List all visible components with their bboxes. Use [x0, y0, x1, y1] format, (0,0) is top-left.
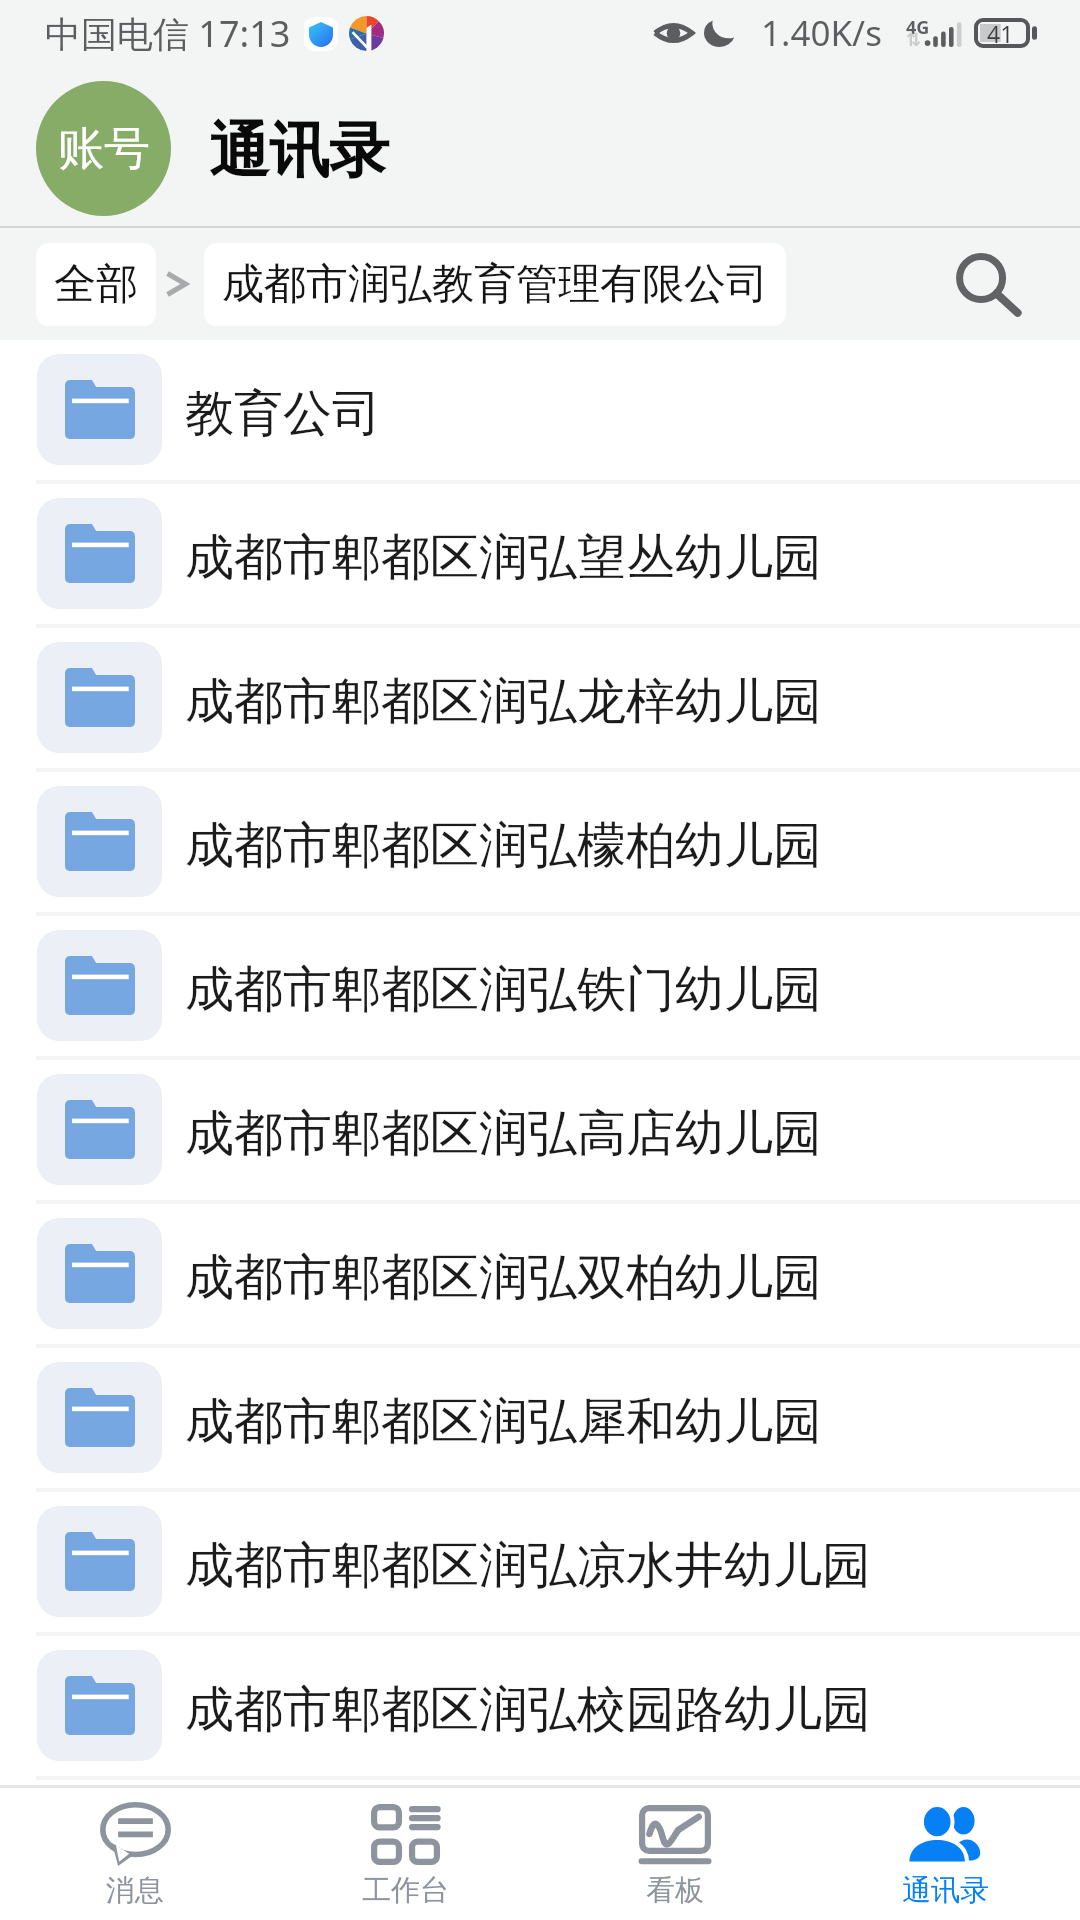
- button[interactable]: 成都市郫都区润弘双柏幼儿园: [0, 1204, 1080, 1348]
- button[interactable]: 成都市润弘教育管理有限公司: [204, 243, 786, 326]
- staticText: 成都市郫都区润弘高店幼儿园: [185, 1103, 822, 1165]
- staticText: 全部: [54, 258, 138, 311]
- button[interactable]: 成都市郫都区润弘高店幼儿园: [0, 1060, 1080, 1204]
- staticText: 成都市郫都区润弘望丛幼儿园: [185, 527, 822, 589]
- staticText: 看板: [646, 1872, 704, 1909]
- staticText: 成都市郫都区润弘双柏幼儿园: [185, 1247, 822, 1309]
- staticText: 成都市郫都区润弘犀和幼儿园: [185, 1391, 822, 1453]
- staticText: 成都市润弘教育管理有限公司: [222, 258, 768, 311]
- staticText: 4G: [906, 15, 930, 40]
- staticText: 1.40K/s: [761, 9, 882, 57]
- button[interactable]: 成都市郫都区润弘犀和幼儿园: [0, 1348, 1080, 1492]
- button[interactable]: 全部: [36, 243, 156, 326]
- button[interactable]: 搜索: [933, 229, 1043, 339]
- staticText: 工作台: [362, 1872, 449, 1909]
- staticText: 成都市郫都区润弘檬柏幼儿园: [185, 815, 822, 877]
- button[interactable]: 成都市郫都区润弘铁门幼儿园: [0, 916, 1080, 1060]
- button[interactable]: 消息: [0, 1788, 270, 1920]
- staticText: 教育公司: [185, 383, 381, 445]
- button[interactable]: 工作台: [270, 1788, 540, 1920]
- staticText: 成都市郫都区润弘校园路幼儿园: [185, 1679, 871, 1741]
- button[interactable]: 账号: [36, 81, 171, 216]
- staticText: ⇅: [906, 29, 922, 50]
- staticText: 中国电信 17:13: [45, 9, 291, 58]
- button[interactable]: 通讯录: [810, 1788, 1080, 1920]
- staticText: 账号: [58, 120, 150, 178]
- button[interactable]: 成都市郫都区润弘龙梓幼儿园: [0, 628, 1080, 772]
- button[interactable]: 成都市郫都区润弘校园路幼儿园: [0, 1636, 1080, 1780]
- button[interactable]: 成都市郫都区润弘望丛幼儿园: [0, 484, 1080, 628]
- button[interactable]: 成都市郫都区润弘檬柏幼儿园: [0, 772, 1080, 916]
- staticText: 41: [987, 18, 1014, 46]
- staticText: 成都市郫都区润弘铁门幼儿园: [185, 959, 822, 1021]
- staticText: 成都市郫都区润弘龙梓幼儿园: [185, 671, 822, 733]
- button[interactable]: 成都市郫都区润弘凉水井幼儿园: [0, 1492, 1080, 1636]
- staticText: 通讯录: [209, 113, 389, 189]
- staticText: 通讯录: [902, 1872, 989, 1909]
- button[interactable]: 教育公司: [0, 340, 1080, 484]
- button[interactable]: 看板: [540, 1788, 810, 1920]
- staticText: 成都市郫都区润弘凉水井幼儿园: [185, 1535, 871, 1597]
- staticText: 消息: [106, 1872, 164, 1909]
